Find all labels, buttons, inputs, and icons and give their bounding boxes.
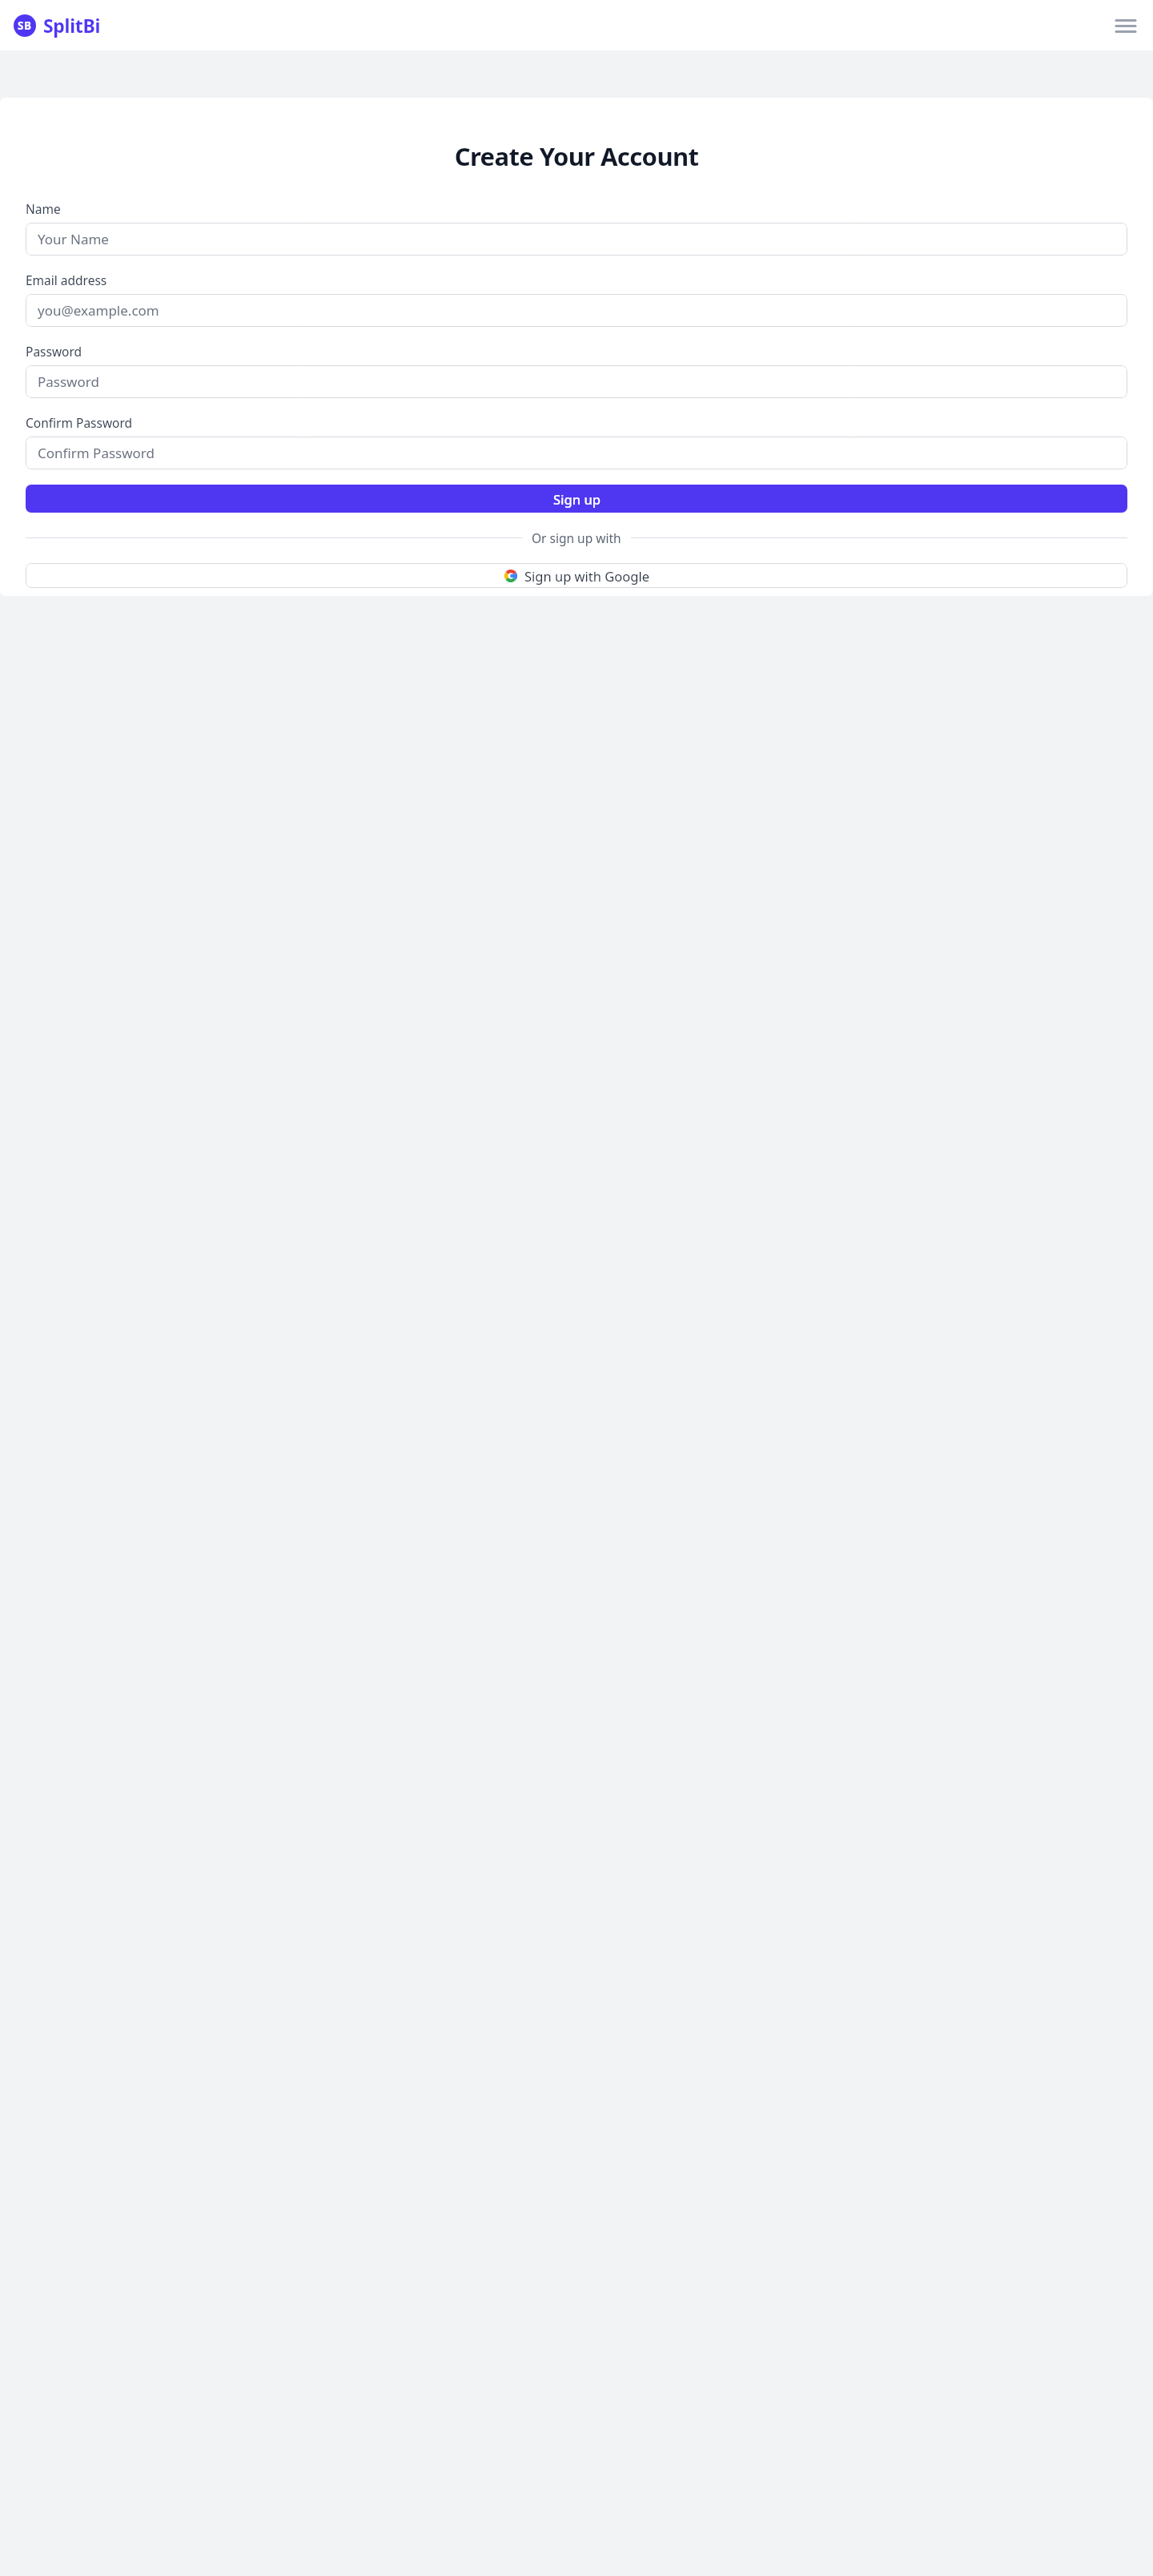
button[interactable]: Confirm Password	[26, 437, 1127, 469]
button[interactable]: Your Name	[26, 223, 1127, 256]
staticText: Create Your Account	[26, 139, 1127, 173]
staticText: Confirm Password	[38, 444, 155, 462]
staticText: you@example.com	[38, 301, 159, 320]
staticText: SB	[18, 18, 32, 33]
staticText: Email address	[26, 272, 107, 288]
button[interactable]: Password	[26, 365, 1127, 398]
staticText: Sign up	[553, 490, 601, 508]
button[interactable]: Sign up with Google	[26, 563, 1127, 588]
staticText: Confirm Password	[26, 414, 133, 431]
button[interactable]: SB	[14, 13, 100, 38]
staticText: Sign up with Google	[524, 567, 649, 585]
staticText: SplitBi	[43, 13, 100, 38]
staticText: Name	[26, 200, 61, 217]
staticText: Password	[26, 343, 82, 360]
staticText: Your Name	[38, 230, 109, 248]
button[interactable]: Open menu	[1108, 8, 1143, 43]
button[interactable]: Sign up	[26, 485, 1127, 513]
staticText: Or sign up with	[532, 529, 621, 546]
button[interactable]: you@example.com	[26, 294, 1127, 327]
staticText: Password	[38, 372, 99, 391]
